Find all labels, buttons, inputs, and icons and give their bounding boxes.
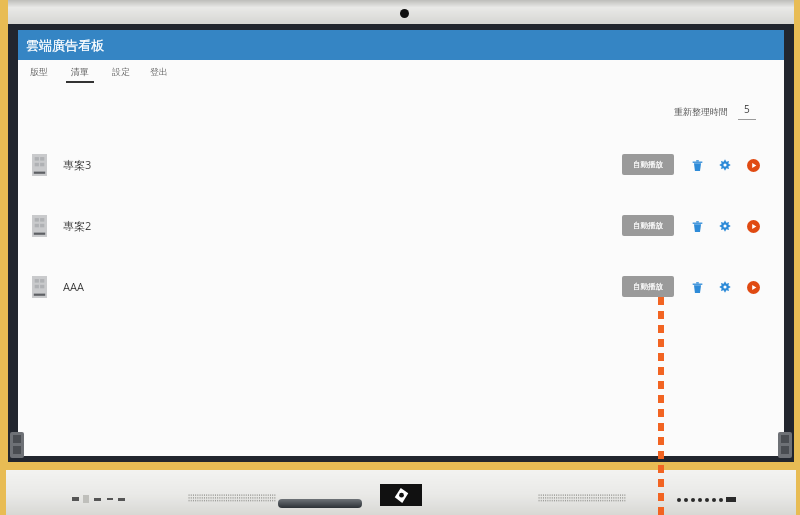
staticText: AAA: [63, 279, 85, 294]
button[interactable]: 自動播放: [622, 276, 674, 297]
button[interactable]: 專案3: [18, 134, 784, 195]
button[interactable]: Play: [744, 217, 762, 235]
button[interactable]: 自動播放: [622, 215, 674, 236]
button[interactable]: Delete: [688, 217, 706, 235]
button[interactable]: Settings: [716, 217, 734, 235]
staticText: 5: [744, 102, 750, 116]
staticText: 登出: [150, 66, 168, 77]
staticText: 專案2: [63, 218, 92, 233]
staticText: 專案3: [63, 157, 92, 172]
button[interactable]: Play: [744, 156, 762, 174]
button[interactable]: Settings: [716, 156, 734, 174]
staticText: 版型: [30, 66, 48, 77]
button[interactable]: 設定: [110, 60, 132, 81]
button[interactable]: Play: [744, 278, 762, 296]
button[interactable]: Delete: [688, 278, 706, 296]
staticText: 自動播放: [633, 221, 663, 230]
button[interactable]: 專案2: [18, 195, 784, 256]
button[interactable]: 清單: [66, 60, 94, 83]
button[interactable]: 自動播放: [622, 154, 674, 175]
staticText: 清單: [71, 66, 89, 77]
button[interactable]: Settings: [716, 278, 734, 296]
staticText: 自動播放: [633, 282, 663, 291]
button[interactable]: 登出: [148, 60, 170, 81]
staticText: 雲端廣告看板: [26, 37, 104, 53]
button[interactable]: Delete: [688, 156, 706, 174]
button[interactable]: 版型: [28, 60, 50, 81]
staticText: 設定: [112, 66, 130, 77]
staticText: 自動播放: [633, 160, 663, 169]
staticText: 重新整理時間: [674, 106, 728, 117]
button[interactable]: AAA: [18, 256, 784, 317]
